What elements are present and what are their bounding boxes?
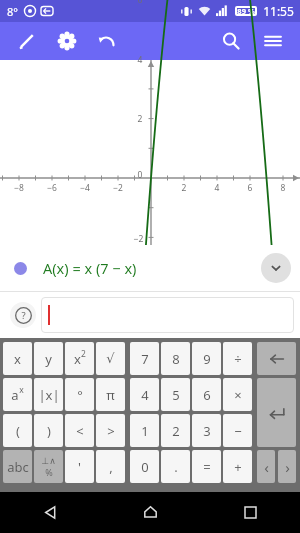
button[interactable]: Menu (256, 24, 290, 58)
button[interactable]: Search (214, 24, 248, 58)
button[interactable]: π (96, 378, 125, 411)
button[interactable]: Help (10, 302, 36, 328)
staticText: × (234, 386, 242, 404)
staticText: = (203, 458, 211, 476)
staticText: ? (21, 309, 26, 322)
staticText: 0 (133, 169, 147, 181)
button[interactable]: + (223, 450, 252, 483)
staticText: % (45, 466, 53, 478)
staticText: 6 (240, 182, 260, 194)
button[interactable]: Left (257, 450, 275, 483)
button[interactable]: ÷ (223, 342, 252, 375)
button[interactable]: Right (278, 450, 296, 483)
staticText: 89 % (237, 6, 255, 16)
staticText: 7 (141, 350, 149, 368)
staticText: ( (16, 422, 20, 440)
button[interactable]: Settings (52, 26, 82, 56)
staticText: ÷ (234, 350, 242, 368)
staticText: 8 (172, 350, 180, 368)
button[interactable]: √ (96, 342, 125, 375)
staticText: 6 (203, 386, 211, 404)
button[interactable]: Edit (12, 26, 42, 56)
button[interactable]: Back (0, 492, 100, 533)
staticText: a (11, 386, 19, 404)
button[interactable]: < (65, 414, 94, 447)
button[interactable]: ⊥∧ (34, 450, 63, 483)
button[interactable]: ( (3, 414, 32, 447)
button[interactable]: Home (100, 492, 200, 533)
staticText: 9 (203, 350, 211, 368)
button[interactable]: 2 (161, 414, 190, 447)
button[interactable]: , (96, 450, 125, 483)
button[interactable]: Recents (200, 492, 300, 533)
staticText: 0 (141, 458, 149, 476)
staticText: . (174, 458, 178, 476)
staticText: ) (47, 422, 51, 440)
staticText: −8 (9, 182, 29, 194)
button[interactable]: 4 (130, 378, 159, 411)
button[interactable]: ' (65, 450, 94, 483)
button[interactable]: − (223, 414, 252, 447)
staticText: ° (77, 386, 83, 404)
staticText: 2 (172, 422, 180, 440)
button[interactable]: 0 (130, 450, 159, 483)
staticText: −2 (130, 233, 147, 245)
staticText: ' (78, 458, 81, 476)
staticText: , (109, 458, 113, 476)
staticText: 4 (133, 54, 147, 66)
button[interactable]: x (3, 342, 32, 375)
staticText: 2 (174, 182, 194, 194)
button[interactable]: × (223, 378, 252, 411)
button[interactable]: Undo (92, 26, 122, 56)
button[interactable]: 7 (130, 342, 159, 375)
staticText: √ (106, 351, 115, 366)
button[interactable]: 3 (192, 414, 221, 447)
staticText: 5 (172, 386, 180, 404)
staticText: › (285, 457, 290, 477)
button[interactable]: Toggle visibility (14, 262, 27, 275)
button[interactable]: Enter (257, 378, 296, 447)
staticText: 6 (133, 0, 147, 6)
button[interactable]: 8 (161, 342, 190, 375)
button[interactable]: a (3, 378, 32, 411)
staticText: abc (7, 458, 29, 476)
staticText: + (234, 458, 242, 476)
staticText: |x| (38, 386, 60, 404)
button[interactable]: ° (65, 378, 94, 411)
staticText: 4 (207, 182, 227, 194)
staticText: 2 (133, 113, 147, 125)
button[interactable]: 9 (192, 342, 221, 375)
button[interactable]: x (65, 342, 94, 375)
button[interactable]: 6 (192, 378, 221, 411)
staticText: x (19, 384, 24, 396)
button[interactable]: |x| (34, 378, 63, 411)
staticText: 8° (7, 4, 18, 19)
staticText: ⊥∧ (41, 456, 56, 466)
button[interactable]: ) (34, 414, 63, 447)
staticText: 1 (141, 422, 149, 440)
button[interactable]: abc (3, 450, 32, 483)
staticText: − (234, 422, 242, 440)
button[interactable]: 5 (161, 378, 190, 411)
button[interactable] (41, 297, 294, 333)
staticText: ‹ (264, 457, 269, 477)
button[interactable]: . (161, 450, 190, 483)
button[interactable]: Collapse (261, 253, 291, 283)
staticText: 8 (273, 182, 293, 194)
staticText: −4 (75, 182, 95, 194)
staticText: > (107, 422, 115, 440)
staticText: 3 (203, 422, 211, 440)
staticText: 2 (81, 348, 86, 360)
staticText: y (45, 350, 52, 368)
staticText: x (74, 350, 81, 368)
button[interactable]: y (34, 342, 63, 375)
button[interactable]: = (192, 450, 221, 483)
staticText: x (14, 350, 21, 368)
button[interactable]: > (96, 414, 125, 447)
staticText: < (76, 422, 84, 440)
button[interactable]: Backspace (257, 342, 296, 375)
staticText: −2 (108, 182, 128, 194)
staticText: −6 (42, 182, 62, 194)
staticText: 11:55 (263, 3, 294, 19)
button[interactable]: 1 (130, 414, 159, 447)
